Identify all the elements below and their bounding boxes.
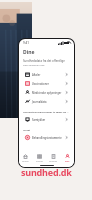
button[interactable]: Samtykker (23, 115, 70, 124)
staticText: Sundhed (49, 160, 57, 163)
staticText: Dine (23, 49, 35, 56)
staticText: 9:41 (23, 41, 29, 45)
staticText: Aftaler (32, 73, 65, 77)
staticText: Andet (23, 128, 30, 131)
staticText: sundhed.dk (21, 166, 72, 178)
staticText: Informationsoplysninger til læger og beh… (23, 110, 70, 113)
button[interactable]: Medicinske oplysninger (23, 88, 70, 97)
staticText: Medicinske oplysninger (32, 91, 65, 95)
button[interactable]: Dine (60, 152, 74, 164)
staticText: Kontakt (36, 160, 43, 163)
staticText: Behandlingstestamente (32, 136, 65, 140)
button[interactable]: Forside (19, 152, 32, 164)
staticText: Vaccinationer (32, 82, 65, 86)
button[interactable]: Aftaler (23, 70, 70, 79)
staticText: Samtykker (32, 118, 65, 122)
staticText: Dine (65, 160, 70, 163)
button[interactable]: Sundhed (46, 152, 60, 164)
staticText: Journaldata (32, 100, 65, 104)
button[interactable]: Kontakt (32, 152, 46, 164)
staticText: Sundhedsdata fra det offentlige (23, 59, 65, 63)
button[interactable]: Journaldata (23, 97, 70, 106)
button[interactable]: Vaccinationer (23, 79, 70, 88)
staticText: Sidst opdateret i dag (23, 64, 45, 67)
button[interactable]: Behandlingstestamente (23, 133, 70, 142)
staticText: Forside (22, 160, 29, 163)
